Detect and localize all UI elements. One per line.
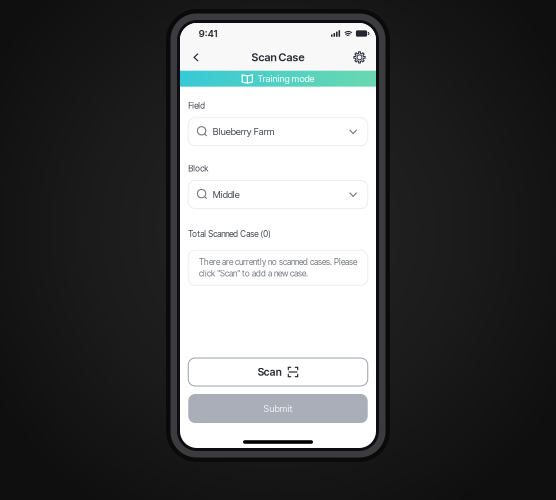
staticText: Submit — [263, 403, 292, 414]
staticText: Blueberry Farm — [213, 126, 275, 137]
staticText: Training mode — [257, 73, 314, 84]
staticText: Scan — [258, 366, 282, 378]
button[interactable]: Scan — [188, 358, 368, 386]
staticText: Block — [188, 163, 208, 173]
staticText: Middle — [213, 189, 240, 200]
staticText: There are currently no scanned cases. Pl… — [199, 257, 357, 278]
button[interactable]: Middle — [188, 180, 368, 208]
button[interactable]: Settings — [347, 45, 371, 69]
button[interactable]: Submit — [188, 394, 368, 423]
staticText: 9:41 — [199, 28, 218, 39]
button[interactable]: Back — [184, 45, 208, 69]
staticText: Scan Case — [251, 51, 304, 64]
staticText: Field — [188, 101, 205, 111]
button[interactable]: Blueberry Farm — [188, 118, 368, 146]
staticText: Total Scanned Case (0) — [188, 229, 271, 239]
